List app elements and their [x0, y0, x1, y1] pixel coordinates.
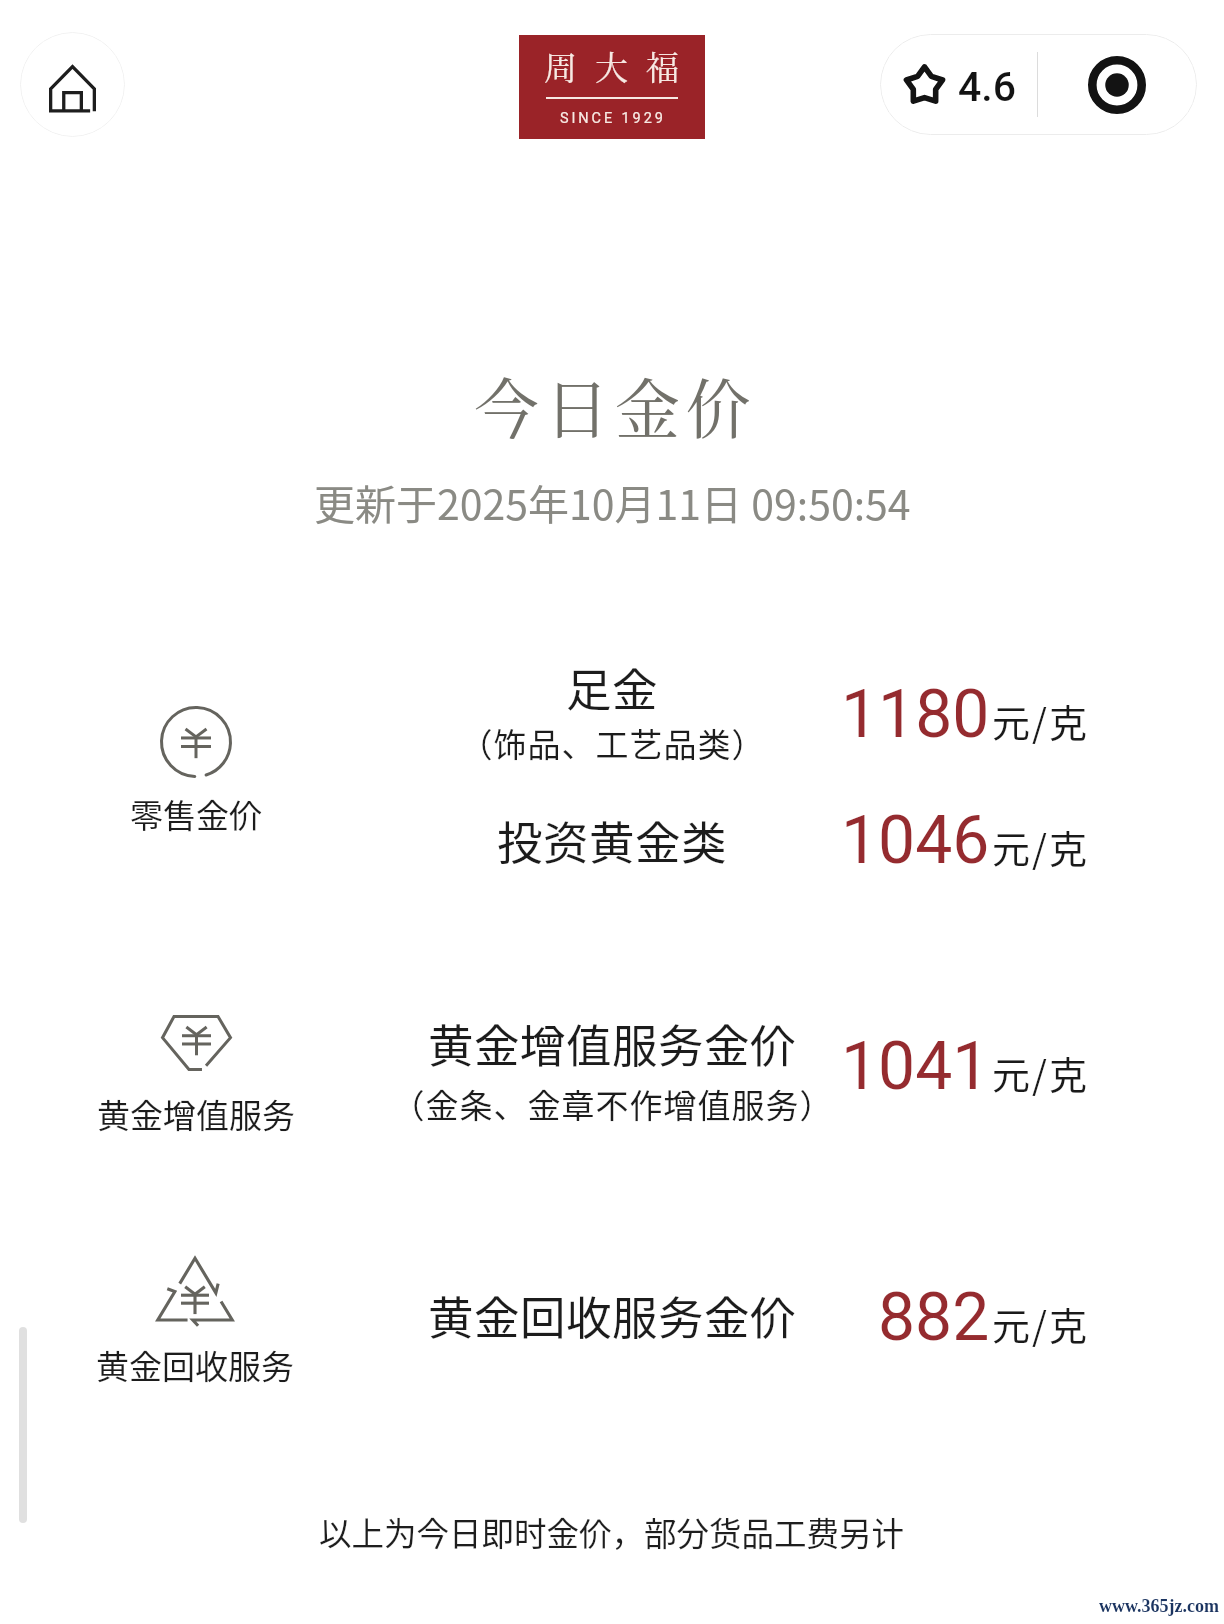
staticText: 以上为今日即时金价，部分货品工费另计: [319, 1508, 905, 1555]
button[interactable]: Menu: [1038, 34, 1197, 135]
staticText: 1041: [841, 1028, 990, 1105]
staticText: SINCE 1929: [560, 110, 666, 127]
staticText: （饰品、工艺品类）: [459, 719, 765, 767]
staticText: 882: [878, 1279, 990, 1356]
staticText: 黄金增值服务: [97, 1090, 295, 1138]
button[interactable]: [56, 692, 336, 826]
staticText: 更新于2025年10月11日 09:50:54: [314, 472, 911, 531]
staticText: 1180: [841, 676, 990, 753]
staticText: 零售金价: [130, 790, 262, 838]
staticText: （金条、金章不作增值服务）: [391, 1080, 833, 1128]
staticText: 元/克: [992, 1045, 1089, 1100]
staticText: 足金: [566, 654, 659, 720]
staticText: 今日金价: [474, 358, 757, 451]
button[interactable]: [55, 1243, 335, 1377]
staticText: 元/克: [992, 819, 1089, 874]
staticText: 1046: [841, 802, 990, 879]
staticText: 黄金回收服务金价: [428, 1282, 797, 1348]
button[interactable]: [56, 1001, 336, 1135]
button[interactable]: 4.6: [880, 34, 1038, 135]
staticText: 元/克: [992, 1296, 1089, 1351]
button[interactable]: Home: [20, 32, 125, 137]
staticText: 周大福: [535, 42, 688, 89]
staticText: 4.6: [958, 63, 1017, 111]
staticText: 黄金增值服务金价: [428, 1010, 797, 1076]
staticText: 投资黄金类: [497, 807, 728, 873]
staticText: 黄金回收服务: [96, 1341, 294, 1389]
staticText: 元/克: [992, 693, 1089, 748]
staticText: www.365jz.com: [1099, 1596, 1219, 1616]
button[interactable]: 周大福: [519, 35, 705, 139]
